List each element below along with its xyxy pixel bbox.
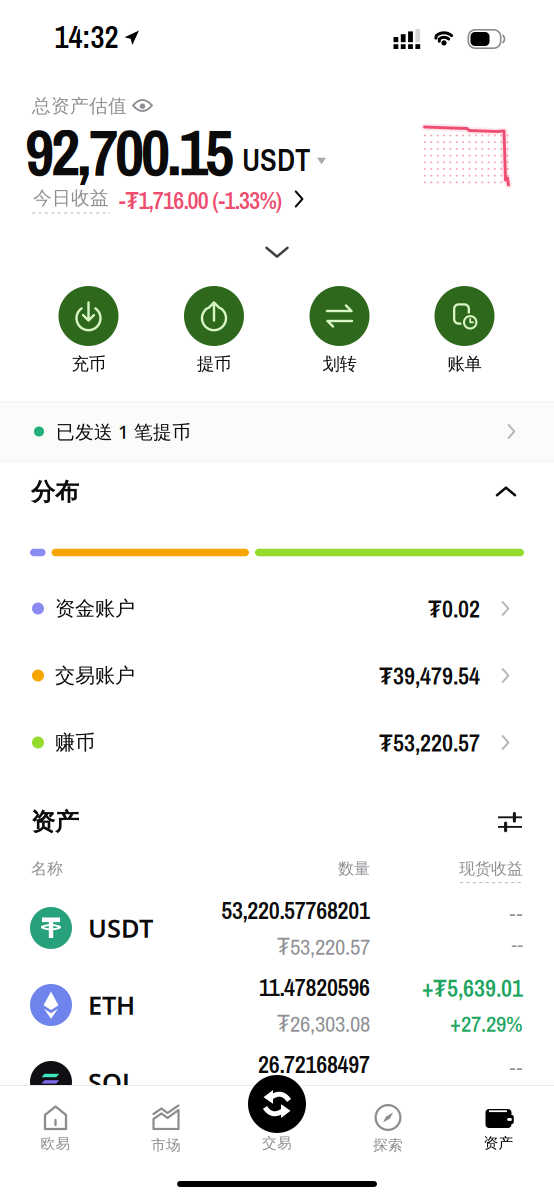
staticText: 提币	[197, 353, 231, 375]
staticText: --	[509, 1053, 523, 1081]
button[interactable]: 赚币	[0, 709, 554, 776]
staticText: 26.72168497	[258, 1048, 370, 1080]
staticText: 充币	[71, 353, 105, 375]
staticText: ₮0.02	[428, 592, 480, 625]
button[interactable]: ETH	[0, 966, 554, 1043]
button[interactable]: 提币	[166, 286, 262, 376]
staticText: +27.29%	[450, 1008, 523, 1039]
button[interactable]: 隐藏资产	[133, 99, 152, 113]
button[interactable]: 交易	[227, 1074, 327, 1153]
staticText: 资产	[483, 1134, 513, 1152]
button[interactable]: 探索	[338, 1103, 438, 1155]
staticText: 名称	[31, 859, 63, 879]
staticText: USDT	[242, 139, 310, 181]
staticText: SOL	[88, 1065, 136, 1099]
staticText: 账单	[447, 353, 481, 375]
staticText: ₮39,479.54	[379, 659, 480, 692]
staticText: 今日收益	[33, 186, 109, 209]
staticText: 现货收益	[459, 859, 523, 879]
button[interactable]: 划转	[291, 286, 387, 376]
button[interactable]: 欧易	[5, 1102, 105, 1153]
staticText: --	[511, 931, 523, 957]
staticText: -₮1,716.00 (-1.33%)	[119, 183, 283, 216]
staticText: 已发送 1 笔提币	[56, 419, 191, 444]
staticText: --	[509, 899, 523, 927]
button[interactable]: 今日收益	[0, 183, 554, 217]
staticText: 资产	[31, 807, 79, 837]
button[interactable]: 切换计价币种	[234, 139, 326, 181]
staticText: 赚币	[55, 730, 95, 755]
staticText: ₮26,303.08	[277, 1007, 370, 1039]
staticText: 交易账户	[55, 663, 135, 688]
staticText: ETH	[88, 988, 135, 1022]
staticText: 数量	[338, 859, 370, 879]
staticText: 资金账户	[55, 596, 135, 621]
staticText: 探索	[373, 1136, 403, 1154]
staticText: ₮13,421.95	[277, 1084, 370, 1116]
button[interactable]: SOL	[0, 1043, 554, 1120]
button[interactable]: 充币	[40, 286, 136, 376]
button[interactable]: 收起	[266, 241, 287, 262]
staticText: USDT	[88, 911, 153, 945]
staticText: 11.47820596	[259, 971, 370, 1003]
button[interactable]: 筛选资产	[498, 812, 522, 831]
staticText: 14:32	[54, 16, 118, 58]
staticText: 92,700.15	[25, 109, 234, 195]
staticText: +₮5,639.01	[422, 971, 523, 1004]
button[interactable]: 资产	[448, 1103, 548, 1153]
staticText: 53,220.57768201	[221, 894, 370, 926]
button[interactable]: 已发送 1 笔提币	[0, 401, 554, 461]
staticText: 分布	[31, 477, 79, 507]
staticText: --	[511, 1085, 523, 1111]
staticText: 总资产估值	[32, 94, 127, 117]
staticText: 划转	[322, 353, 356, 375]
button[interactable]: 账单	[416, 286, 512, 376]
staticText: 交易	[262, 1134, 292, 1152]
staticText: ₮53,220.57	[379, 726, 480, 759]
button[interactable]: 资金账户	[0, 575, 554, 642]
button[interactable]: 市场	[116, 1104, 216, 1155]
staticText: 欧易	[40, 1134, 70, 1152]
staticText: ₮53,220.57	[277, 930, 370, 962]
button[interactable]: USDT	[0, 889, 554, 966]
button[interactable]: 分布	[0, 475, 554, 509]
button[interactable]: 交易账户	[0, 642, 554, 709]
staticText: 市场	[151, 1136, 181, 1154]
